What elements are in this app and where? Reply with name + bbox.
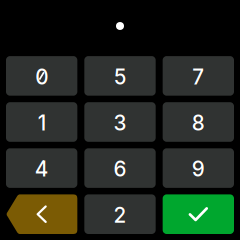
staticText: 7 — [192, 64, 204, 89]
button[interactable]: 6 — [84, 148, 156, 188]
staticText: 6 — [113, 157, 126, 182]
button[interactable]: 7 — [163, 56, 234, 96]
staticText: 3 — [113, 110, 126, 135]
staticText: 2 — [113, 203, 126, 228]
staticText: 5 — [114, 64, 126, 89]
staticText: 9 — [192, 157, 205, 182]
button[interactable]: 3 — [84, 102, 156, 142]
button[interactable]: 9 — [163, 148, 234, 188]
staticText: 1 — [38, 110, 46, 135]
button[interactable]: Delete — [6, 194, 77, 234]
button[interactable]: 1 — [6, 102, 77, 142]
button[interactable]: 0 — [6, 56, 77, 96]
staticText: 0 — [35, 64, 48, 89]
button[interactable]: 2 — [84, 194, 156, 234]
button[interactable]: 8 — [163, 102, 234, 142]
staticText: 4 — [35, 157, 49, 182]
button[interactable]: Confirm — [163, 194, 234, 234]
button[interactable]: 4 — [6, 148, 77, 188]
staticText: 8 — [192, 110, 205, 135]
button[interactable]: 5 — [84, 56, 156, 96]
